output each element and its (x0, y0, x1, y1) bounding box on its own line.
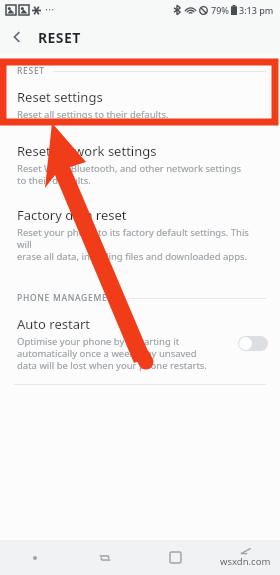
button[interactable]: Reset network settings (0, 135, 280, 193)
button[interactable]: Auto restart (0, 308, 280, 378)
staticText: Reset all settings to their defaults. (17, 108, 169, 121)
button[interactable]: Home (140, 540, 210, 575)
staticText: RESET (17, 65, 45, 77)
staticText: Factory data reset (17, 206, 127, 224)
staticText: PHONE MANAGEMENT (17, 292, 121, 304)
staticText: Reset settings (17, 88, 103, 106)
staticText: RESET (38, 28, 81, 47)
button[interactable]: Auto restart toggle (238, 336, 268, 351)
staticText: Reset Wi-Fi, Bluetooth, and other networ… (17, 162, 242, 187)
staticText: Optimise your phone by restarting it aut… (17, 335, 207, 372)
staticText: Reset your phone to its factory default … (17, 226, 264, 263)
staticText: ⋯ (45, 4, 55, 16)
button[interactable]: Reset settings (0, 81, 280, 127)
button[interactable]: Recents (70, 540, 140, 575)
button[interactable]: Factory data reset (0, 199, 280, 269)
button[interactable]: Back (0, 20, 34, 54)
staticText: 3:13 pm (239, 4, 274, 16)
staticText: Auto restart (17, 315, 90, 333)
button[interactable]: Back (210, 540, 280, 575)
button[interactable]: Menu (0, 540, 70, 575)
staticText: Reset network settings (17, 142, 157, 160)
staticText: wsxdn.com (220, 555, 271, 568)
staticText: 79% (211, 4, 229, 16)
